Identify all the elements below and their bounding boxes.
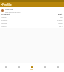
button[interactable]: Account [1,13,63,16]
button[interactable]: Theme [1,22,63,25]
staticText: Edit [58,13,63,16]
staticText: Add [30,68,33,70]
button[interactable]: Home [0,63,12,72]
staticText: v2.1 [59,25,63,28]
staticText: Privacy [1,19,8,22]
staticText: Account [1,13,10,16]
staticText: Notify [1,16,7,19]
button[interactable]: Navigate up [0,2,2,7]
staticText: About [1,25,7,28]
staticText: Theme [1,22,8,25]
button[interactable]: Add [25,63,38,72]
staticText: On [60,16,63,19]
staticText: alex.kim@mail.com [5,11,21,13]
staticText: Alex Kim [5,8,14,11]
staticText: Public [57,19,63,22]
button[interactable]: Search [12,63,25,72]
button[interactable]: Privacy [1,19,63,22]
staticText: Light [58,22,63,25]
button[interactable]: Me [51,63,64,72]
button[interactable]: Notify [1,16,63,19]
button[interactable]: Alerts [38,63,51,72]
button[interactable]: About [1,25,63,28]
staticText: Profile [2,3,12,7]
